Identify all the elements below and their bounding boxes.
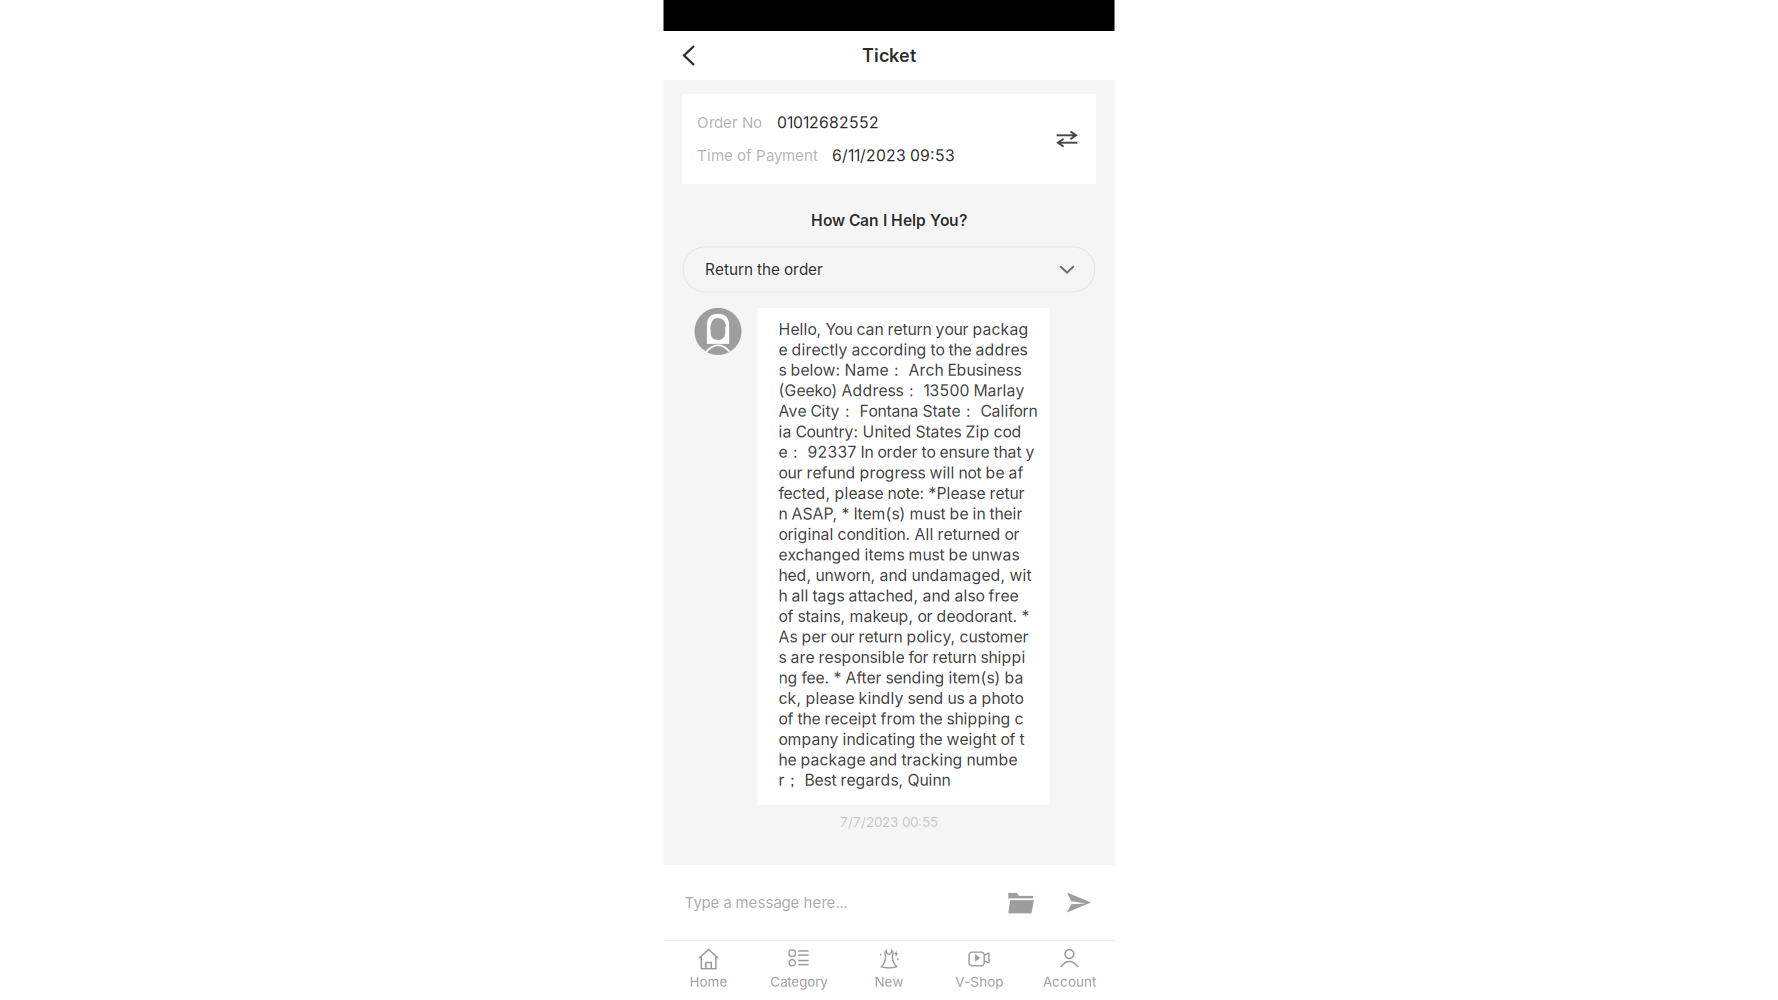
staticText: e directly according to the addres bbox=[778, 340, 1027, 359]
staticText: e： 92337 In order to ensure that y bbox=[778, 442, 1034, 462]
staticText: he package and tracking numbe bbox=[778, 750, 1017, 769]
staticText: hed, unworn, and undamaged, wit bbox=[778, 566, 1031, 585]
staticText: How Can I Help You? bbox=[811, 211, 967, 230]
staticText: As per our return policy, customer bbox=[778, 627, 1028, 646]
staticText: V-Shop bbox=[955, 974, 1003, 990]
button[interactable]: Switch order bbox=[1050, 120, 1084, 157]
staticText: fected, please note: *Please retur bbox=[778, 484, 1024, 503]
staticText: of the receipt from the shipping c bbox=[778, 709, 1023, 728]
staticText: h all tags attached, and also free bbox=[778, 586, 1018, 605]
staticText: Order No bbox=[697, 113, 762, 132]
staticText: n ASAP, * Item(s) must be in their bbox=[778, 504, 1022, 523]
staticText: 01012682552 bbox=[777, 113, 879, 132]
staticText: original condition. All returned or bbox=[778, 525, 1019, 544]
staticText: ck, please kindly send us a photo bbox=[778, 689, 1023, 708]
staticText: Account bbox=[1043, 974, 1096, 990]
button[interactable]: Back bbox=[663, 32, 712, 78]
button[interactable]: New bbox=[844, 940, 934, 1000]
staticText: (Geeko) Address： 13500 Marlay bbox=[778, 381, 1024, 401]
staticText: Home bbox=[690, 974, 728, 990]
staticText: ia Country: United States Zip cod bbox=[778, 422, 1021, 441]
staticText: Ave City： Fontana State： Californ bbox=[778, 401, 1037, 421]
button[interactable]: Account bbox=[1024, 940, 1114, 1000]
staticText: r； Best regards, Quinn bbox=[778, 770, 950, 790]
button[interactable]: Attach file bbox=[999, 882, 1042, 922]
staticText: of stains, makeup, or deodorant. * bbox=[778, 607, 1029, 626]
staticText: exchanged items must be unwas bbox=[778, 545, 1019, 564]
staticText: Time of Payment bbox=[697, 146, 818, 165]
staticText: 7/7/2023 00:55 bbox=[840, 814, 938, 830]
staticText: s below: Name： Arch Ebusiness bbox=[778, 360, 1021, 380]
button[interactable]: Home bbox=[663, 940, 754, 1000]
staticText: s are responsible for return shippi bbox=[778, 648, 1025, 667]
button[interactable]: Send bbox=[1058, 884, 1099, 921]
staticText: ompany indicating the weight of t bbox=[778, 730, 1024, 749]
staticText: Return the order bbox=[705, 260, 823, 279]
staticText: 6/11/2023 09:53 bbox=[832, 146, 955, 165]
staticText: Ticket bbox=[862, 45, 916, 66]
button[interactable]: Category bbox=[754, 940, 844, 1000]
staticText: Type a message here... bbox=[684, 893, 847, 912]
button[interactable]: Return the order bbox=[683, 247, 1095, 292]
staticText: our refund progress will not be af bbox=[778, 463, 1023, 482]
staticText: Category bbox=[770, 974, 827, 990]
staticText: New bbox=[874, 974, 903, 990]
staticText: Hello, You can return your packag bbox=[778, 320, 1028, 339]
staticText: ng fee. * After sending item(s) ba bbox=[778, 668, 1023, 687]
button[interactable]: V-Shop bbox=[934, 940, 1024, 1000]
